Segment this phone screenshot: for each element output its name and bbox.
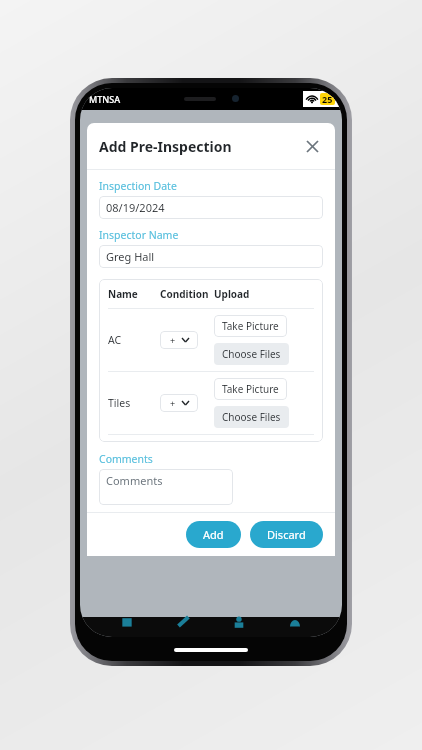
button[interactable]: Close: [301, 135, 323, 157]
button[interactable]: Greg Hall: [99, 245, 323, 268]
staticText: 25: [322, 93, 333, 105]
staticText: Comments: [99, 452, 153, 466]
button[interactable]: Choose Files: [214, 406, 289, 428]
staticText: 08/19/2024: [106, 200, 165, 215]
staticText: Add: [203, 527, 224, 542]
staticText: Name: [108, 287, 160, 301]
button[interactable]: Condition for AC: [160, 331, 198, 349]
staticText: AC: [108, 333, 160, 347]
button[interactable]: Take Picture: [214, 378, 287, 400]
button[interactable]: Add: [186, 521, 241, 548]
button[interactable]: 08/19/2024: [99, 196, 323, 219]
button[interactable]: Discard: [250, 521, 323, 548]
button[interactable]: Choose Files: [214, 343, 289, 365]
staticText: Take Picture: [222, 382, 279, 396]
staticText: MTNSA: [89, 93, 121, 105]
staticText: Choose Files: [222, 410, 281, 424]
staticText: Tiles: [108, 396, 160, 410]
staticText: Upload: [214, 287, 250, 301]
staticText: Take Picture: [222, 319, 279, 333]
staticText: Greg Hall: [106, 249, 155, 264]
staticText: Discard: [267, 527, 306, 542]
staticText: Inspection Date: [99, 179, 177, 193]
staticText: +: [170, 334, 176, 346]
button[interactable]: Condition for Tiles: [160, 394, 198, 412]
button[interactable]: Take Picture: [214, 315, 287, 337]
staticText: Choose Files: [222, 347, 281, 361]
staticText: Condition: [160, 287, 214, 301]
staticText: Inspector Name: [99, 228, 179, 242]
button[interactable]: Comments: [99, 469, 233, 505]
staticText: +: [170, 397, 176, 409]
staticText: Add Pre-Inspection: [99, 137, 301, 156]
staticText: Comments: [106, 473, 163, 488]
